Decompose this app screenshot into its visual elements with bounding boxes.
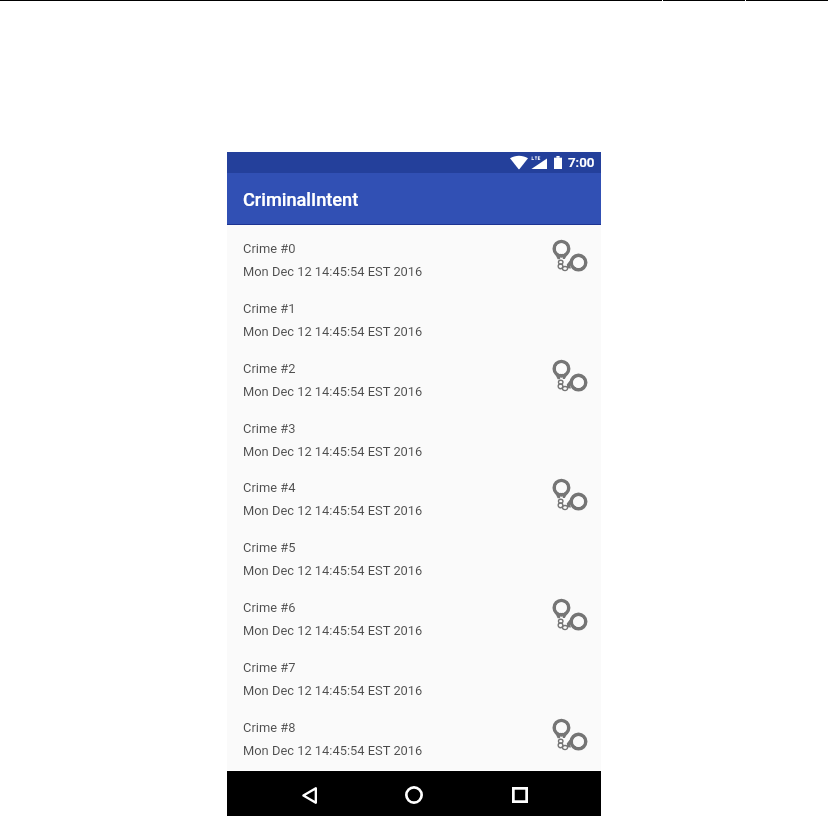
staticText: Crime #7 [243, 660, 296, 675]
staticText: Mon Dec 12 14:45:54 EST 2016 [243, 324, 423, 339]
other: Mobile signal [530, 156, 547, 169]
other: Wi-Fi [510, 156, 528, 169]
staticText: Crime #0 [243, 241, 296, 256]
staticText: Crime #4 [243, 480, 296, 495]
staticText: Mon Dec 12 14:45:54 EST 2016 [243, 683, 423, 698]
staticText: Crime #2 [243, 361, 296, 376]
staticText: Mon Dec 12 14:45:54 EST 2016 [243, 563, 423, 578]
button[interactable]: Home [390, 772, 438, 816]
staticText: Crime #5 [243, 540, 296, 555]
staticText: Crime #8 [243, 720, 296, 735]
button[interactable]: Crime #8 [227, 704, 601, 764]
staticText: Mon Dec 12 14:45:54 EST 2016 [243, 743, 423, 758]
staticText: Mon Dec 12 14:45:54 EST 2016 [243, 503, 423, 518]
staticText: Mon Dec 12 14:45:54 EST 2016 [243, 444, 423, 459]
staticText: Crime #6 [243, 600, 296, 615]
button[interactable]: Crime #0 [227, 225, 601, 285]
button[interactable]: Crime #7 [227, 644, 601, 704]
button[interactable]: Crime #5 [227, 524, 601, 584]
button[interactable]: Recent apps [496, 772, 544, 816]
staticText: Mon Dec 12 14:45:54 EST 2016 [243, 384, 423, 399]
button[interactable]: Crime #1 [227, 285, 601, 345]
button[interactable]: Back [285, 772, 333, 816]
staticText: Mon Dec 12 14:45:54 EST 2016 [243, 623, 423, 638]
button[interactable]: Crime #6 [227, 584, 601, 644]
staticText: Mon Dec 12 14:45:54 EST 2016 [243, 264, 423, 279]
button[interactable]: Crime #2 [227, 345, 601, 405]
staticText: Crime #3 [243, 421, 296, 436]
other: Battery [554, 156, 562, 169]
staticText: CriminalIntent [243, 189, 359, 210]
button[interactable]: Crime #3 [227, 405, 601, 465]
staticText: Crime #1 [243, 301, 296, 316]
staticText: 7:00 [568, 155, 595, 171]
button[interactable]: Crime #4 [227, 464, 601, 524]
